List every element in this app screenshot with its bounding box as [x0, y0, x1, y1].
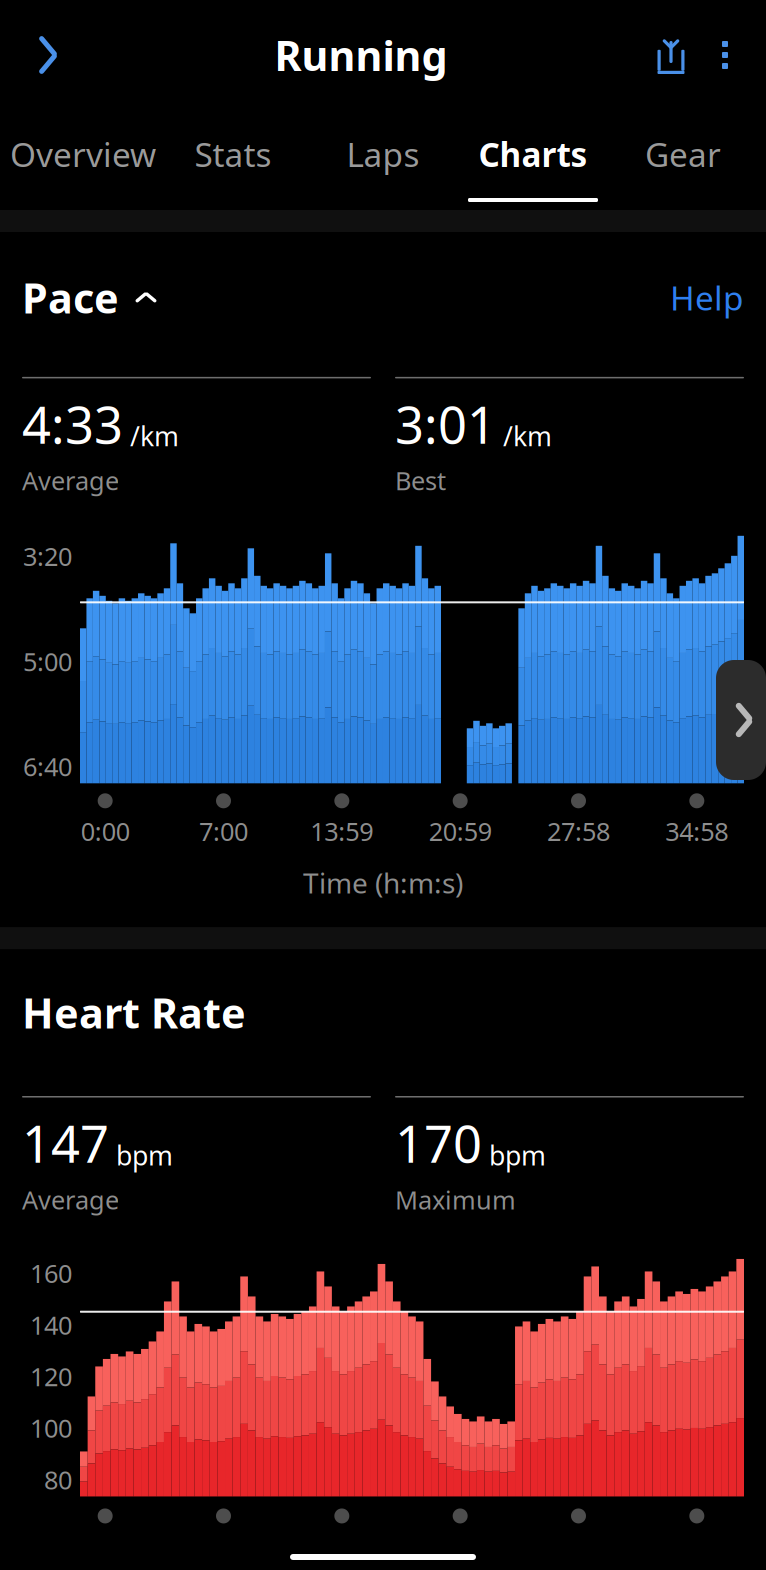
staticText: /km — [503, 418, 552, 454]
staticText: Best — [395, 464, 446, 497]
staticText: Maximum — [395, 1183, 516, 1216]
staticText: Stats — [194, 132, 271, 176]
staticText: 4:33 — [22, 390, 123, 458]
button[interactable]: Stats — [158, 110, 308, 210]
staticText: bpm — [489, 1137, 546, 1173]
staticText: 5:00 — [23, 644, 72, 678]
button[interactable]: Laps — [308, 110, 458, 210]
staticText: 170 — [395, 1109, 482, 1177]
staticText: 147 — [22, 1109, 109, 1177]
staticText: 27:58 — [547, 814, 610, 848]
button[interactable]: Back — [18, 25, 78, 85]
button[interactable]: Pace — [22, 262, 157, 333]
staticText: 160 — [30, 1256, 72, 1290]
staticText: Running — [274, 28, 447, 82]
staticText: 120 — [30, 1360, 72, 1393]
staticText: 20:59 — [429, 814, 492, 848]
button[interactable]: Charts — [458, 110, 608, 210]
staticText: Gear — [645, 132, 721, 176]
button[interactable]: Overview — [8, 110, 158, 210]
button[interactable]: Help — [656, 267, 744, 328]
staticText: Laps — [346, 132, 419, 176]
staticText: Overview — [10, 132, 156, 176]
staticText: Help — [670, 275, 744, 320]
button[interactable]: Share — [644, 26, 698, 84]
button[interactable]: Gear — [608, 110, 758, 210]
staticText: Charts — [478, 132, 587, 176]
staticText: 34:58 — [665, 814, 728, 848]
button[interactable]: More options — [698, 26, 752, 84]
staticText: 100 — [30, 1411, 72, 1445]
staticText: Heart Rate — [22, 985, 246, 1040]
staticText: 140 — [30, 1308, 72, 1342]
staticText: 13:59 — [310, 814, 373, 848]
button[interactable]: Open panel — [716, 660, 766, 780]
staticText: Average — [22, 464, 119, 497]
staticText: /km — [130, 418, 179, 454]
staticText: 3:01 — [395, 390, 496, 458]
staticText: Average — [22, 1183, 119, 1216]
staticText: Pace — [22, 270, 119, 325]
staticText: Time (h:m:s) — [303, 864, 463, 901]
staticText: 3:20 — [23, 539, 72, 573]
staticText: 80 — [44, 1463, 72, 1496]
staticText: 7:00 — [199, 814, 248, 848]
staticText: bpm — [116, 1137, 173, 1173]
staticText: 0:00 — [81, 814, 130, 848]
staticText: 6:40 — [23, 750, 72, 783]
